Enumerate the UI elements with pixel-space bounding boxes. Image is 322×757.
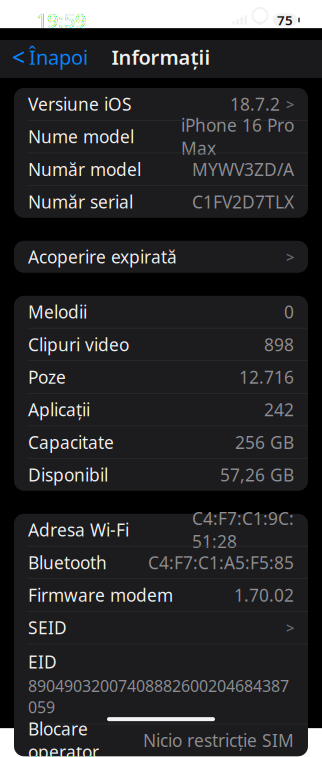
- staticText: 57,26 GB: [220, 463, 294, 486]
- staticText: 12.716: [239, 365, 294, 388]
- button[interactable]: Bluetooth: [14, 546, 308, 578]
- staticText: Înapoi: [29, 44, 88, 70]
- button[interactable]: Acoperire expirată: [14, 241, 308, 273]
- staticText: 898: [264, 333, 294, 356]
- staticText: MYWV3ZD/A: [192, 158, 294, 181]
- staticText: Număr serial: [28, 190, 133, 213]
- staticText: 75: [277, 11, 293, 29]
- staticText: 1.70.02: [234, 583, 294, 606]
- staticText: 256 GB: [235, 431, 294, 454]
- staticText: <: [12, 42, 25, 72]
- staticText: Firmware modem: [28, 583, 173, 606]
- staticText: Adresa Wi-Fi: [28, 518, 129, 541]
- staticText: iPhone 16 Pro Max: [181, 114, 294, 160]
- staticText: C4:F7:C1:9C:51:28: [192, 507, 294, 553]
- staticText: >: [286, 618, 294, 637]
- button[interactable]: Blocare operator: [14, 724, 308, 756]
- staticText: Număr model: [28, 158, 141, 181]
- button[interactable]: Versiune iOS: [14, 88, 308, 120]
- button[interactable]: Aplicații: [14, 394, 308, 426]
- button[interactable]: Clipuri video: [14, 328, 308, 360]
- staticText: 19:59: [36, 7, 86, 33]
- staticText: EID: [28, 650, 57, 673]
- staticText: Aplicații: [28, 398, 90, 421]
- button[interactable]: Capacitate: [14, 426, 308, 458]
- button[interactable]: Disponibil: [14, 459, 308, 491]
- button[interactable]: EID: [14, 644, 308, 724]
- staticText: Nume model: [28, 125, 134, 148]
- staticText: SEID: [28, 616, 67, 639]
- staticText: Acoperire expirată: [28, 245, 177, 268]
- button[interactable]: <: [0, 40, 100, 74]
- staticText: Bluetooth: [28, 551, 107, 574]
- button[interactable]: Adresa Wi-Fi: [14, 514, 308, 546]
- staticText: 0: [284, 300, 294, 323]
- staticText: Clipuri video: [28, 333, 129, 356]
- staticText: Disponibil: [28, 463, 108, 486]
- staticText: 89049032007408882600204684387059: [28, 675, 289, 718]
- button[interactable]: Număr model: [14, 153, 308, 185]
- button[interactable]: SEID: [14, 612, 308, 644]
- staticText: Nicio restricție SIM: [143, 729, 294, 752]
- staticText: 18.7.2: [230, 92, 280, 115]
- button[interactable]: Nume model: [14, 121, 308, 153]
- staticText: >: [286, 247, 294, 267]
- staticText: 242: [264, 398, 294, 421]
- staticText: Versiune iOS: [28, 92, 132, 115]
- button[interactable]: Număr serial: [14, 186, 308, 218]
- staticText: C4:F7:C1:A5:F5:85: [148, 551, 294, 574]
- staticText: Capacitate: [28, 431, 114, 454]
- button[interactable]: Poze: [14, 361, 308, 393]
- staticText: Informații: [111, 44, 210, 70]
- staticText: >: [286, 94, 294, 114]
- button[interactable]: Melodii: [14, 296, 308, 328]
- staticText: Melodii: [28, 300, 87, 323]
- staticText: Poze: [28, 365, 66, 388]
- staticText: Blocare operator: [28, 717, 99, 757]
- staticText: C1FV2D7TLX: [192, 190, 294, 213]
- button[interactable]: Firmware modem: [14, 579, 308, 611]
